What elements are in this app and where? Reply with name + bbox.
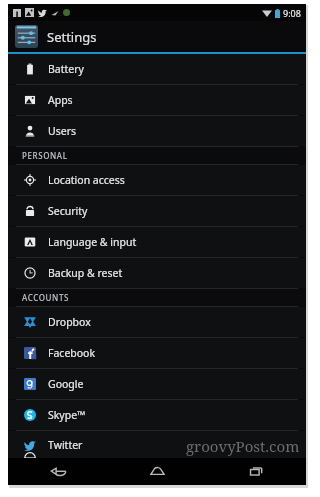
- button[interactable]: Location access: [8, 165, 306, 195]
- staticText: Apps: [48, 93, 73, 107]
- staticText: ACCOUNTS: [22, 292, 69, 303]
- button[interactable]: Skype™: [8, 400, 306, 430]
- staticText: Google: [48, 377, 84, 391]
- button[interactable]: Apps: [8, 85, 306, 115]
- button[interactable]: Back: [8, 458, 108, 485]
- button[interactable]: Google: [8, 369, 306, 399]
- button[interactable]: Language & input: [8, 227, 306, 257]
- button[interactable]: Settings: [8, 21, 306, 52]
- button[interactable]: Twitter: [8, 431, 306, 458]
- button[interactable]: Battery: [8, 54, 306, 84]
- staticText: Security: [48, 204, 88, 218]
- staticText: Battery: [48, 62, 84, 76]
- staticText: Backup & reset: [48, 266, 123, 280]
- staticText: Language & input: [48, 235, 137, 249]
- staticText: Settings: [47, 28, 97, 46]
- button[interactable]: Security: [8, 196, 306, 226]
- staticText: groovyPost.com: [186, 436, 300, 456]
- staticText: Location access: [48, 173, 125, 187]
- button[interactable]: Facebook: [8, 338, 306, 368]
- button[interactable]: Home: [108, 458, 207, 485]
- staticText: Skype™: [48, 408, 86, 422]
- staticText: PERSONAL: [22, 150, 68, 161]
- button[interactable]: Recent apps: [207, 458, 306, 485]
- button[interactable]: Dropbox: [8, 307, 306, 337]
- staticText: Facebook: [48, 346, 96, 360]
- staticText: 9:08: [283, 7, 301, 19]
- staticText: Dropbox: [48, 315, 91, 329]
- staticText: Twitter: [48, 438, 83, 452]
- button[interactable]: Users: [8, 116, 306, 146]
- staticText: Users: [48, 124, 76, 138]
- button[interactable]: Backup & reset: [8, 258, 306, 288]
